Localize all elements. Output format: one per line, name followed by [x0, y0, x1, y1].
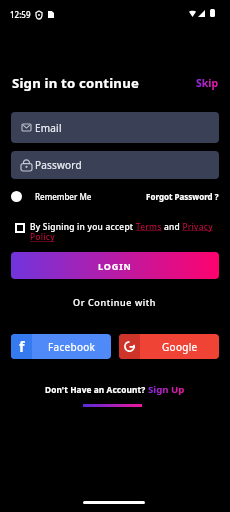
staticText: Google	[162, 340, 198, 354]
other: Google	[124, 341, 135, 352]
staticText: Remember Me	[35, 191, 92, 202]
button[interactable]: Password	[11, 151, 219, 179]
staticText: LOGIN	[98, 260, 132, 272]
button[interactable]: LOGIN	[11, 252, 219, 279]
button[interactable]: Google	[119, 334, 219, 359]
staticText: Facebook	[48, 340, 96, 354]
staticText: Sign Up	[148, 383, 185, 396]
button[interactable]: Remember Me	[11, 189, 92, 204]
staticText: By Signing in you accept Terms and Priva…	[30, 221, 220, 243]
button[interactable]: Don't Have an Account?	[45, 383, 185, 396]
staticText: 12:59	[10, 9, 31, 20]
staticText: Forgot Password ?	[146, 191, 219, 202]
staticText: Sign in to continue	[12, 74, 139, 92]
button[interactable]: Accept terms	[15, 223, 25, 233]
button[interactable]: Email	[11, 112, 219, 143]
button[interactable]: f	[11, 334, 111, 359]
button[interactable]: Skip	[196, 76, 219, 90]
staticText: Email	[35, 121, 62, 135]
staticText: Skip	[196, 76, 219, 90]
button[interactable]: Forgot Password ?	[146, 189, 219, 204]
staticText: Or Continue with	[73, 296, 157, 308]
staticText: Don't Have an Account?	[45, 384, 148, 395]
staticText: Password	[35, 158, 82, 172]
staticText: f	[19, 337, 25, 356]
